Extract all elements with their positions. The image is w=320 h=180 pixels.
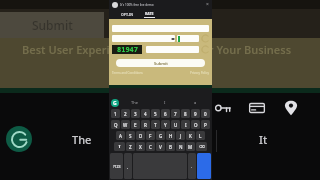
button[interactable]: G (156, 131, 165, 140)
button[interactable]: 1 (111, 109, 120, 118)
button[interactable]: 3 (131, 109, 140, 118)
staticText: N (179, 144, 183, 150)
staticText: 81947 (117, 45, 138, 54)
button[interactable]: 9 (191, 109, 200, 118)
staticText: P (204, 122, 207, 128)
button[interactable]: Enter (197, 153, 211, 179)
staticText: F (149, 133, 152, 139)
staticText: D (139, 133, 143, 139)
staticText: 0 (204, 111, 207, 117)
button[interactable]: U (171, 120, 180, 129)
button[interactable]: Passwords (212, 97, 234, 119)
staticText: 1 (114, 111, 117, 117)
button[interactable]: O (191, 120, 200, 129)
staticText: 7 (174, 111, 177, 117)
staticText: OPT-IN (121, 12, 134, 17)
staticText: 4 (144, 111, 147, 117)
button[interactable]: V (156, 142, 165, 151)
staticText: S (129, 133, 132, 139)
staticText: L (199, 133, 202, 139)
button[interactable]: Terms and Conditions (112, 71, 143, 75)
button[interactable]: Privacy Policy (190, 71, 209, 75)
button[interactable] (146, 46, 199, 53)
staticText: Best User Experience (22, 42, 136, 57)
button[interactable]: W (121, 120, 130, 129)
button[interactable]: 0 (201, 109, 210, 118)
button[interactable]: X (136, 142, 145, 151)
button[interactable]: ⬆ (114, 142, 125, 151)
staticText: K (189, 133, 192, 139)
button[interactable]: Y (161, 120, 170, 129)
staticText: 6 (164, 111, 167, 117)
button[interactable]: 2 (121, 109, 130, 118)
staticText: X (139, 144, 142, 150)
button[interactable]: . (188, 153, 196, 179)
staticText: T (154, 122, 157, 128)
button[interactable]: M (186, 142, 195, 151)
staticText: W (123, 122, 128, 128)
button[interactable]: D (136, 131, 145, 140)
staticText: V (159, 144, 162, 150)
staticText: G (159, 133, 163, 139)
staticText: ?123 (113, 164, 121, 169)
button[interactable]: Payment methods (246, 97, 268, 119)
staticText: H (169, 133, 173, 139)
button[interactable]: R (141, 120, 150, 129)
button[interactable]: 6 (161, 109, 170, 118)
button[interactable]: Submit (116, 59, 205, 67)
button[interactable]: P (201, 120, 210, 129)
button[interactable]: I (150, 97, 180, 108)
button[interactable]: 4 (141, 109, 150, 118)
button[interactable]: 7 (171, 109, 180, 118)
button[interactable]: H (166, 131, 175, 140)
button[interactable] (112, 35, 175, 42)
staticText: 5 (154, 111, 157, 117)
button[interactable]: The (72, 132, 92, 147)
button[interactable]: 5 (151, 109, 160, 118)
button[interactable]: Refresh (202, 35, 209, 42)
staticText: The (131, 100, 138, 105)
staticText: I (185, 122, 187, 128)
staticText: J (180, 133, 182, 139)
button[interactable]: ?123 (110, 153, 123, 179)
button[interactable]: B (166, 142, 175, 151)
button[interactable]: ⌫ (196, 142, 207, 151)
button[interactable]: T (151, 120, 160, 129)
button[interactable]: The (119, 97, 150, 108)
button[interactable]: Z (126, 142, 135, 151)
button[interactable]: L (196, 131, 205, 140)
button[interactable]: Q (111, 120, 120, 129)
button[interactable]: , (124, 153, 132, 179)
button[interactable]: Addresses (280, 97, 302, 119)
button[interactable]: OPT-IN (121, 12, 134, 17)
button[interactable]: S (126, 131, 135, 140)
staticText: . (191, 164, 193, 169)
button[interactable]: Refresh captcha (202, 46, 209, 53)
staticText: B (169, 144, 172, 150)
button[interactable]: C (146, 142, 155, 151)
button[interactable]: E (131, 120, 140, 129)
staticText: ⌫ (199, 144, 205, 149)
button[interactable]: a (180, 97, 210, 108)
button[interactable]: Grammarly (111, 99, 119, 107)
button[interactable]: It (259, 132, 268, 147)
button[interactable] (177, 35, 199, 42)
button[interactable]: N (176, 142, 185, 151)
staticText: U (174, 122, 178, 128)
button[interactable]: Grammarly (6, 126, 32, 152)
button[interactable]: K (186, 131, 195, 140)
button[interactable]: A (116, 131, 125, 140)
staticText: Submit (32, 17, 73, 33)
button[interactable]: 8 (181, 109, 190, 118)
staticText: E (134, 122, 137, 128)
staticText: for Your Business (198, 42, 292, 57)
button[interactable]: J (176, 131, 185, 140)
button[interactable]: I (181, 120, 190, 129)
staticText: I (164, 100, 166, 105)
button[interactable]: RATE (144, 11, 155, 18)
staticText: O (194, 122, 198, 128)
button[interactable]: F (146, 131, 155, 140)
staticText: Y (164, 122, 167, 128)
